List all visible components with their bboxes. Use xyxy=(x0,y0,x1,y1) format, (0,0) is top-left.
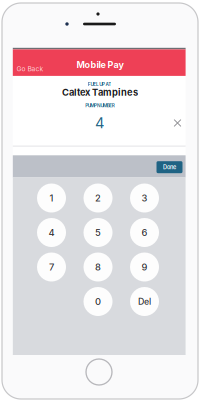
button[interactable]: 7 xyxy=(37,252,66,281)
button[interactable]: 6 xyxy=(130,218,159,247)
button[interactable]: Done xyxy=(156,161,182,173)
staticText: FUEL UP AT xyxy=(88,81,111,87)
staticText: 6 xyxy=(141,227,147,238)
button[interactable]: 5 xyxy=(83,218,112,247)
button[interactable]: 9 xyxy=(130,252,159,281)
staticText: 3 xyxy=(141,192,147,204)
button[interactable]: 0 xyxy=(83,287,112,316)
button[interactable]: Del xyxy=(130,287,159,316)
staticText: 2 xyxy=(95,192,101,204)
staticText: Caltex Tampines xyxy=(62,87,138,98)
staticText: PUMP NUMBER xyxy=(85,103,115,108)
button[interactable]: 3 xyxy=(130,183,159,212)
staticText: Del xyxy=(138,296,151,307)
staticText: 4 xyxy=(95,114,104,132)
staticText: Go Back xyxy=(16,65,43,73)
button[interactable]: Go Back xyxy=(13,58,47,80)
staticText: 7 xyxy=(49,261,54,273)
button[interactable]: 8 xyxy=(83,252,112,281)
staticText: 0 xyxy=(95,296,101,307)
staticText: Done xyxy=(163,164,176,171)
staticText: 4 xyxy=(48,227,54,238)
button[interactable]: 2 xyxy=(83,183,112,212)
staticText: 1 xyxy=(49,192,53,204)
staticText: 9 xyxy=(141,261,147,273)
staticText: 8 xyxy=(95,261,101,273)
button[interactable]: 1 xyxy=(37,183,66,212)
staticText: Mobile Pay xyxy=(76,59,123,70)
button[interactable]: Clear xyxy=(168,114,186,132)
button[interactable]: 4 xyxy=(37,218,66,247)
staticText: 5 xyxy=(95,227,101,238)
